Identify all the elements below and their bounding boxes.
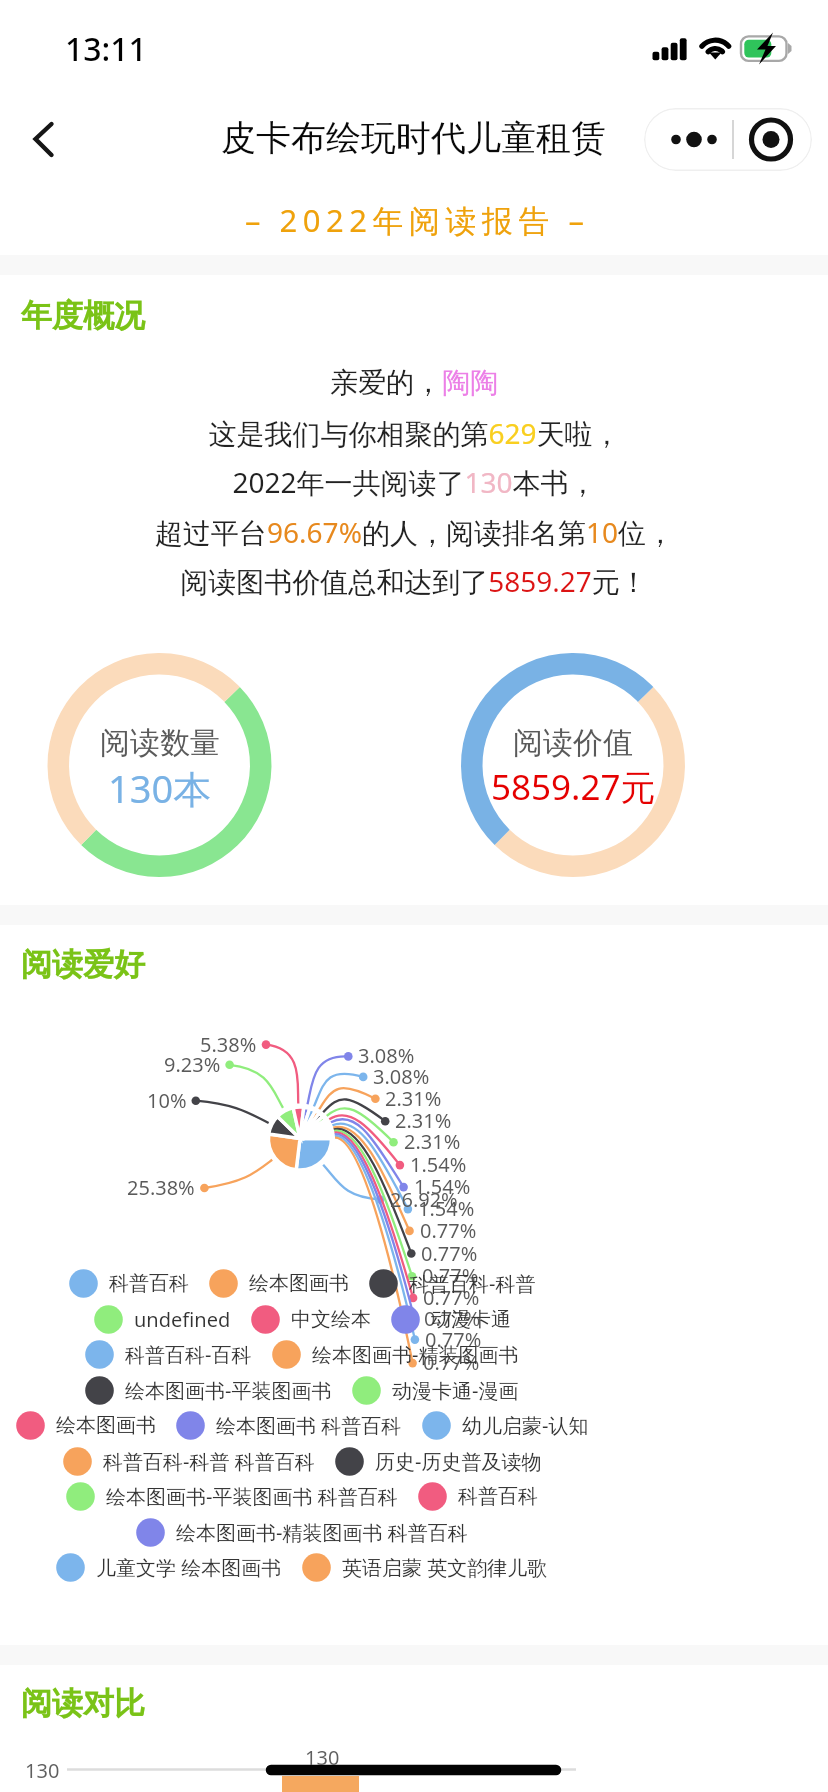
staticText: 2.31% xyxy=(385,1085,442,1112)
button[interactable]: 绘本图画书-精装图画书 科普百科 xyxy=(136,1515,165,1550)
staticText: 绘本图画书-平装图画书 科普百科 xyxy=(106,1483,398,1510)
button[interactable]: 科普百科 xyxy=(418,1479,447,1514)
staticText: 25.38% xyxy=(127,1174,195,1201)
staticText: 科普百科-百科 xyxy=(125,1341,252,1368)
staticText: 130 xyxy=(305,1744,340,1771)
staticText: 0.77% xyxy=(424,1305,481,1332)
staticText: 这是我们与你相聚的第629天啦， xyxy=(208,414,621,452)
button[interactable]: 科普百科-科普 xyxy=(369,1266,398,1301)
staticText: 2.31% xyxy=(395,1107,452,1134)
staticText: undefined xyxy=(134,1306,231,1333)
button[interactable]: undefined xyxy=(94,1302,123,1337)
staticText: 超过平台96.67%的人，阅读排名第10位， xyxy=(155,513,674,551)
staticText: 阅读对比 xyxy=(21,1684,145,1723)
staticText: 1.54% xyxy=(418,1195,475,1222)
staticText: 科普百科-科普 科普百科 xyxy=(103,1448,315,1475)
staticText: 科普百科 xyxy=(109,1271,189,1296)
staticText: 阅读价值 xyxy=(513,724,633,762)
staticText: 皮卡布绘玩时代儿童租赁 xyxy=(221,116,606,160)
staticText: 130 xyxy=(25,1757,60,1784)
staticText: – 2022年阅读报告 – xyxy=(245,199,590,241)
staticText: 科普百科 xyxy=(458,1484,538,1509)
button[interactable]: More options xyxy=(644,108,812,171)
staticText: 1.54% xyxy=(414,1173,471,1200)
button[interactable]: 历史-历史普及读物 xyxy=(335,1444,364,1479)
staticText: 绘本图画书-精装图画书 xyxy=(312,1341,519,1368)
staticText: 0.77% xyxy=(422,1262,479,1289)
staticText: 13:11 xyxy=(65,27,147,71)
staticText: 绘本图画书 科普百科 xyxy=(216,1412,402,1439)
staticText: 儿童文学 绘本图画书 xyxy=(96,1554,282,1581)
staticText: 历史-历史普及读物 xyxy=(375,1448,542,1475)
staticText: 绘本图画书-平装图画书 xyxy=(125,1377,332,1404)
staticText: 亲爱的，陶陶 xyxy=(330,365,498,400)
staticText: 3.08% xyxy=(373,1063,430,1090)
staticText: 绘本图画书 xyxy=(249,1271,349,1296)
staticText: 0.77% xyxy=(423,1349,480,1376)
staticText: 英语启蒙 英文韵律儿歌 xyxy=(342,1554,548,1581)
staticText: 5859.27元 xyxy=(491,763,656,811)
staticText: 2022年一共阅读了130本书， xyxy=(232,463,597,501)
staticText: 3.08% xyxy=(358,1042,415,1069)
staticText: 动漫卡通 xyxy=(431,1307,511,1332)
staticText: 中文绘本 xyxy=(291,1307,371,1332)
staticText: 0.77% xyxy=(423,1284,480,1311)
staticText: 9.23% xyxy=(164,1051,221,1078)
button[interactable]: 中文绘本 xyxy=(251,1302,280,1337)
button[interactable]: 科普百科-百科 xyxy=(85,1337,114,1372)
button[interactable]: 动漫卡通 xyxy=(391,1302,420,1337)
button[interactable]: 动漫卡通-漫画 xyxy=(352,1373,381,1408)
staticText: 0.77% xyxy=(420,1217,477,1244)
button[interactable]: 科普百科 xyxy=(69,1266,98,1301)
staticText: 5.38% xyxy=(200,1031,257,1058)
button[interactable]: 科普百科-科普 科普百科 xyxy=(63,1444,92,1479)
staticText: 阅读爱好 xyxy=(21,945,145,984)
button[interactable]: 绘本图画书-平装图画书 xyxy=(85,1373,114,1408)
staticText: 130本 xyxy=(108,762,212,814)
staticText: 0.77% xyxy=(421,1240,478,1267)
staticText: 2.31% xyxy=(404,1128,461,1155)
staticText: 26.92% xyxy=(390,1186,458,1213)
button[interactable]: 绘本图画书 xyxy=(16,1408,45,1443)
button[interactable]: 绘本图画书 xyxy=(209,1266,238,1301)
staticText: 年度概况 xyxy=(21,296,145,335)
staticText: 科普百科-科普 xyxy=(409,1270,536,1297)
button[interactable]: 绘本图画书-精装图画书 xyxy=(272,1337,301,1372)
staticText: 绘本图画书 xyxy=(56,1413,156,1438)
staticText: 10% xyxy=(147,1087,187,1114)
staticText: 阅读数量 xyxy=(100,724,220,762)
button[interactable]: 绘本图画书-平装图画书 科普百科 xyxy=(66,1479,95,1514)
staticText: 动漫卡通-漫画 xyxy=(392,1377,519,1404)
button[interactable]: 英语启蒙 英文韵律儿歌 xyxy=(302,1550,331,1585)
button[interactable]: 绘本图画书 科普百科 xyxy=(176,1408,205,1443)
staticText: 0.77% xyxy=(425,1326,482,1353)
staticText: 1.54% xyxy=(410,1151,467,1178)
staticText: 幼儿启蒙-认知 xyxy=(462,1412,589,1439)
button[interactable]: Back xyxy=(20,108,82,170)
button[interactable]: 幼儿启蒙-认知 xyxy=(422,1408,451,1443)
button[interactable]: 儿童文学 绘本图画书 xyxy=(56,1550,85,1585)
staticText: 绘本图画书-精装图画书 科普百科 xyxy=(176,1519,468,1546)
staticText: 阅读图书价值总和达到了5859.27元！ xyxy=(180,562,648,600)
